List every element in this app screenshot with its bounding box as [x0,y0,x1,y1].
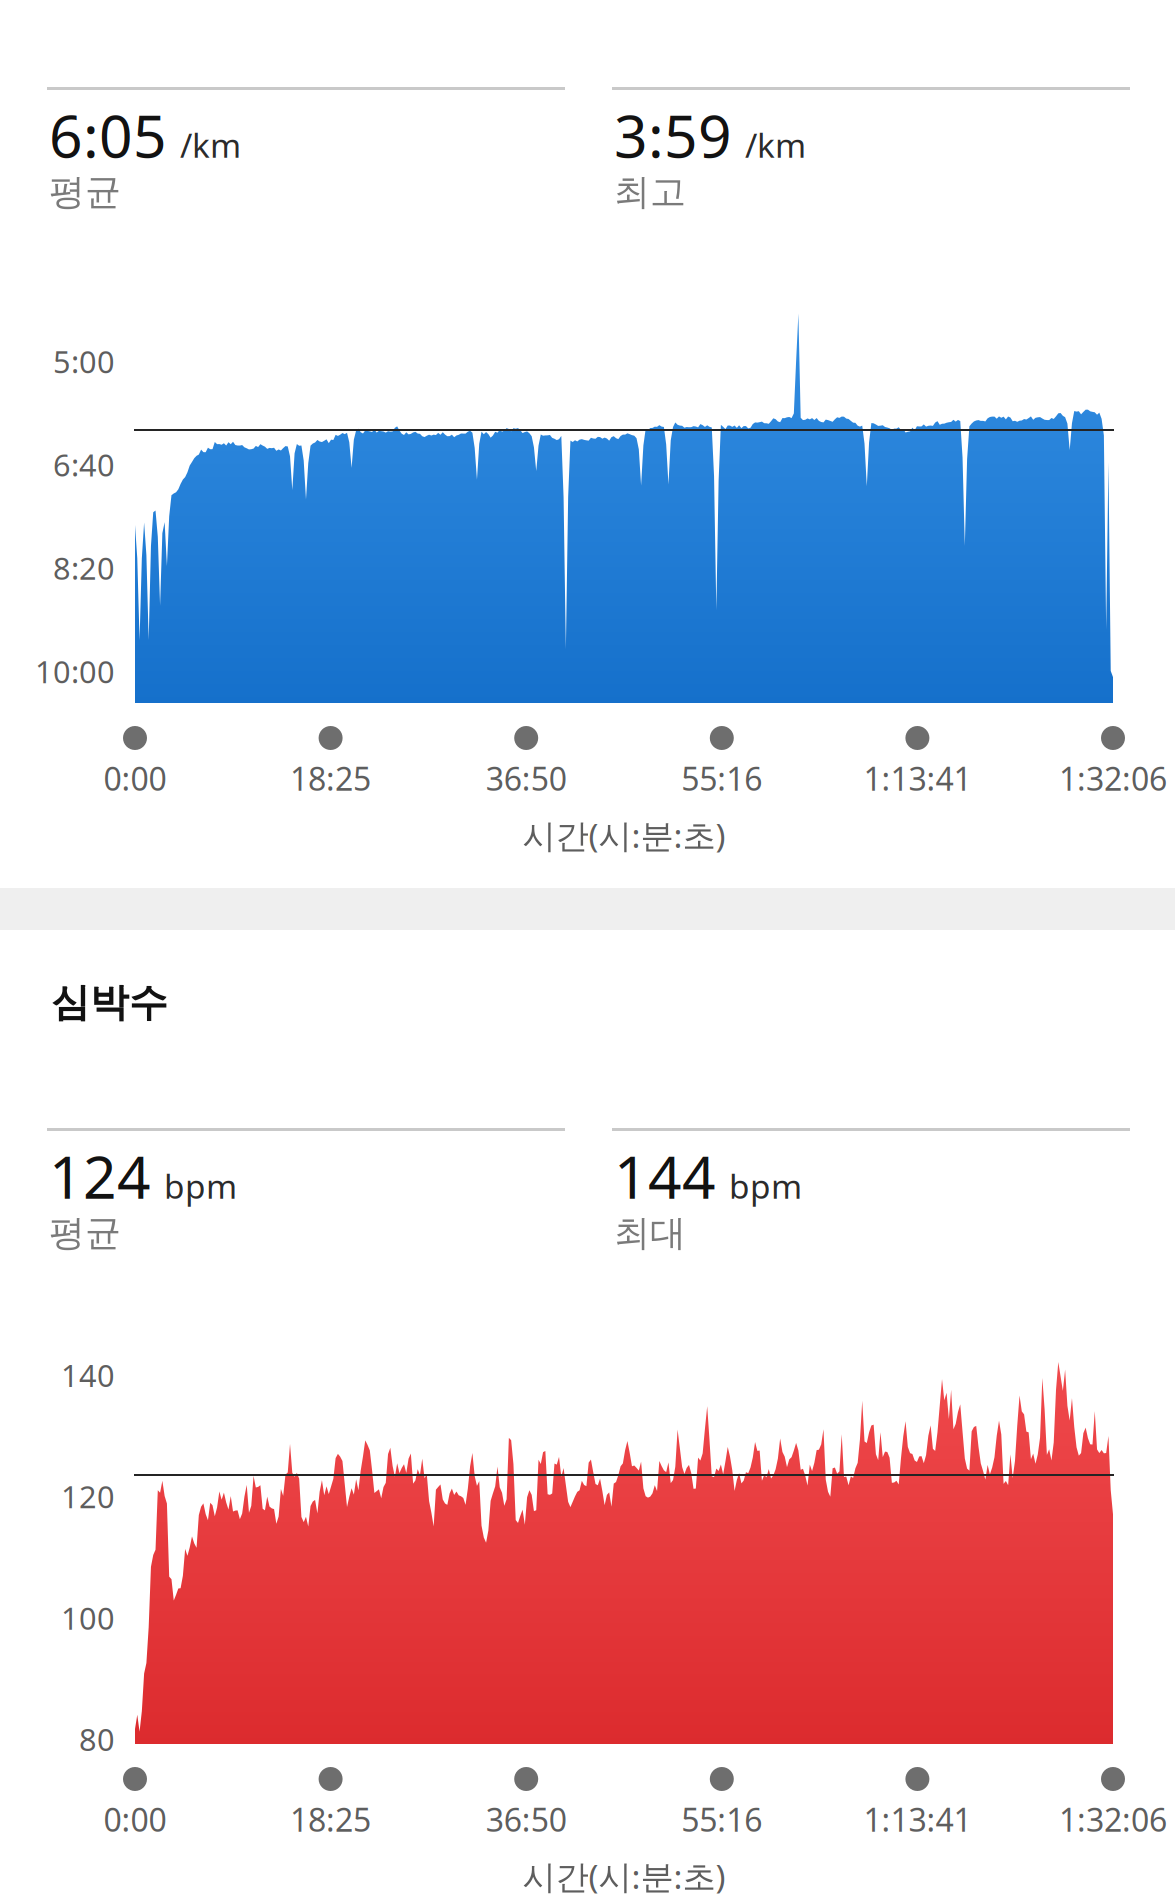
staticText: /km [180,123,241,167]
button[interactable]: 6:05 [47,86,565,211]
staticText: 최대 [614,1211,686,1255]
staticText: 18:25 [290,1798,371,1840]
staticText: 최고 [614,170,686,214]
staticText: 10:00 [35,651,115,692]
button[interactable]: 심박수 그래프 [135,1338,1113,1744]
staticText: 140 [61,1355,115,1395]
button[interactable]: 페이스 그래프 [135,290,1113,703]
staticText: 6:05 [49,96,167,174]
staticText: 시간(시:분:초) [522,1854,725,1898]
staticText: 1:13:41 [863,757,971,799]
staticText: 55:16 [681,1798,762,1840]
staticText: 124 [49,1137,151,1215]
staticText: 36:50 [486,1798,567,1840]
staticText: 120 [61,1476,115,1517]
staticText: 0:00 [103,1798,166,1840]
staticText: 평균 [49,1211,121,1255]
staticText: 시간(시:분:초) [522,813,725,857]
button[interactable]: 124 [47,1127,565,1252]
staticText: 1:13:41 [863,1798,971,1840]
staticText: 36:50 [486,757,567,799]
staticText: 1:32:06 [1059,757,1167,799]
staticText: 심박수 [51,979,168,1026]
staticText: 평균 [49,170,121,214]
staticText: 55:16 [681,757,762,799]
staticText: 80 [79,1719,115,1759]
button[interactable]: 144 [612,1127,1130,1252]
staticText: 18:25 [290,757,371,799]
staticText: 3:59 [614,96,732,174]
staticText: 5:00 [53,341,115,382]
staticText: 0:00 [103,757,166,799]
staticText: /km [745,123,806,167]
staticText: 100 [61,1597,115,1638]
staticText: 1:32:06 [1059,1798,1167,1840]
staticText: 8:20 [53,548,115,588]
staticText: bpm [729,1164,802,1208]
button[interactable]: 3:59 [612,86,1130,211]
staticText: bpm [164,1164,237,1208]
staticText: 144 [614,1137,716,1215]
staticText: 6:40 [53,444,115,485]
